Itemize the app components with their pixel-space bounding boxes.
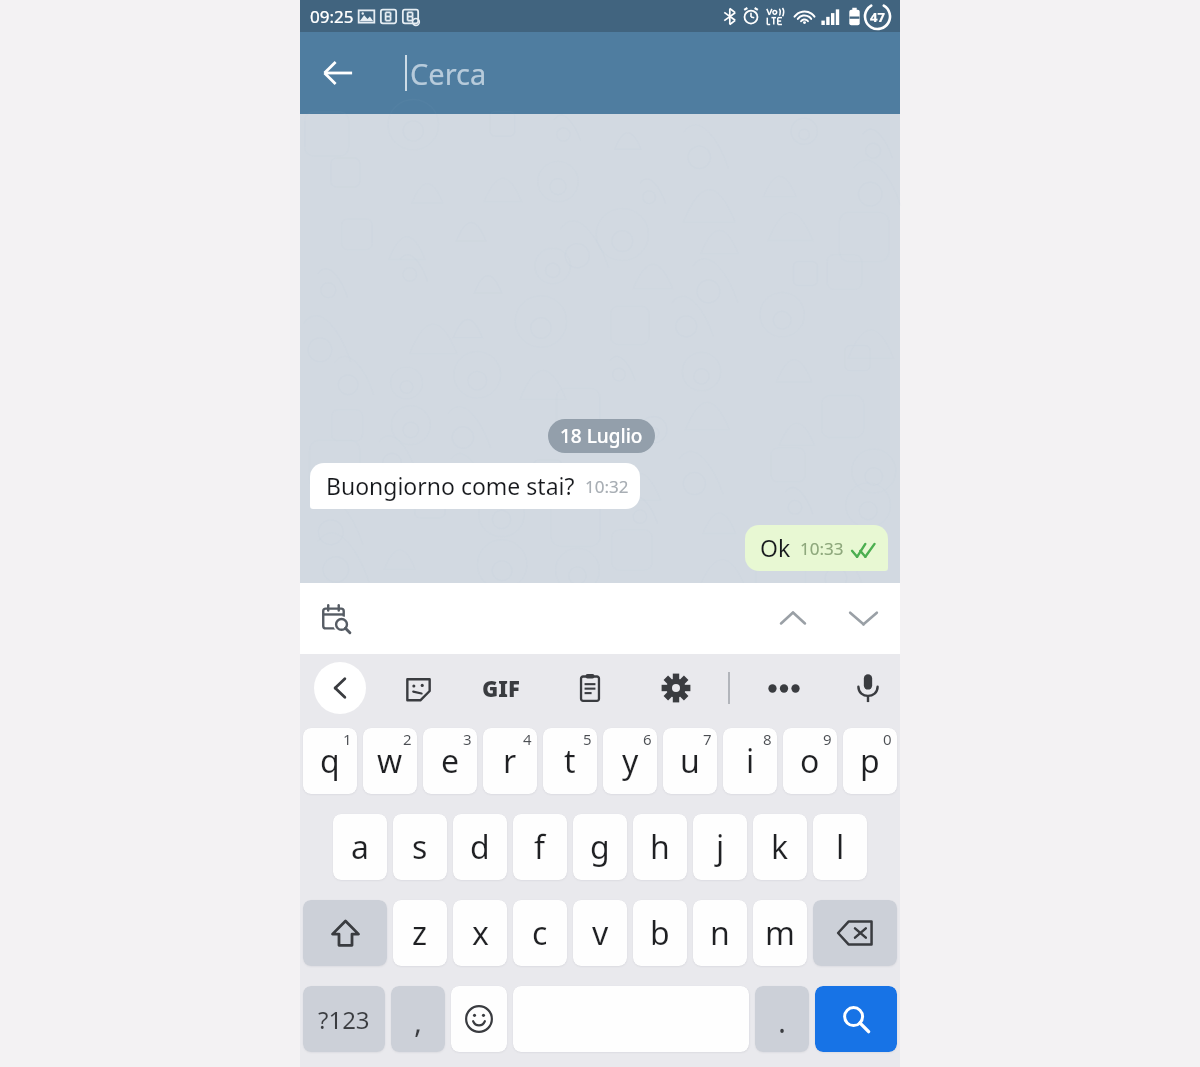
button[interactable]: s <box>393 814 447 880</box>
staticText: t <box>564 739 576 783</box>
staticText: 2 <box>403 729 412 749</box>
staticText: d <box>470 825 490 869</box>
staticText: f <box>534 825 546 869</box>
staticText: 9 <box>823 729 832 749</box>
button[interactable]: r <box>483 728 537 794</box>
button[interactable]: w <box>363 728 417 794</box>
staticText: k <box>771 825 789 869</box>
button[interactable]: Next result <box>835 590 891 646</box>
button[interactable]: h <box>633 814 687 880</box>
staticText: 5 <box>583 729 592 749</box>
staticText: ?123 <box>318 1003 370 1036</box>
button[interactable]: Shift <box>303 900 387 966</box>
button[interactable]: , <box>391 986 445 1052</box>
button[interactable]: u <box>663 728 717 794</box>
button[interactable]: j <box>693 814 747 880</box>
button[interactable]: b <box>633 900 687 966</box>
staticText: 10:33 <box>800 537 844 560</box>
button[interactable]: Backspace <box>813 900 897 966</box>
staticText: y <box>622 739 639 783</box>
staticText: 09:25 <box>310 5 354 28</box>
staticText: Buongiorno come stai? <box>326 470 575 501</box>
button[interactable]: c <box>513 900 567 966</box>
staticText: Cerca <box>410 54 487 93</box>
button[interactable]: Hide toolbar <box>314 662 366 714</box>
button[interactable]: n <box>693 900 747 966</box>
button[interactable]: y <box>603 728 657 794</box>
staticText: 3 <box>463 729 472 749</box>
button[interactable]: . <box>755 986 809 1052</box>
button[interactable]: x <box>453 900 507 966</box>
button[interactable]: p <box>843 728 897 794</box>
staticText: 7 <box>703 729 712 749</box>
button[interactable]: z <box>393 900 447 966</box>
staticText: o <box>800 739 820 783</box>
button[interactable]: Emoji <box>451 986 507 1052</box>
staticText: g <box>590 825 610 869</box>
staticText: x <box>472 911 489 955</box>
staticText: i <box>746 739 755 783</box>
staticText: . <box>778 1001 787 1042</box>
button[interactable]: e <box>423 728 477 794</box>
staticText: 0 <box>883 729 892 749</box>
staticText: c <box>532 911 548 955</box>
button[interactable]: Ok <box>745 525 888 571</box>
button[interactable]: Previous result <box>765 590 821 646</box>
staticText: u <box>680 739 700 783</box>
staticText: v <box>592 911 609 955</box>
staticText: s <box>412 825 428 869</box>
staticText: 8 <box>763 729 772 749</box>
staticText: 18 Luglio <box>560 423 643 449</box>
button[interactable]: a <box>333 814 387 880</box>
staticText: GIF <box>482 673 520 703</box>
staticText: , <box>414 1001 423 1042</box>
button[interactable]: Buongiorno come stai? <box>310 463 640 509</box>
button[interactable]: Voice input <box>845 665 891 711</box>
button[interactable]: GIF <box>478 665 524 711</box>
button[interactable]: Clipboard <box>567 665 613 711</box>
button[interactable]: v <box>573 900 627 966</box>
staticText: j <box>716 825 725 869</box>
button[interactable]: Search <box>815 986 897 1052</box>
button[interactable]: o <box>783 728 837 794</box>
button[interactable]: d <box>453 814 507 880</box>
button[interactable]: q <box>303 728 357 794</box>
button[interactable]: Stickers <box>395 665 441 711</box>
button[interactable]: i <box>723 728 777 794</box>
staticText: 1 <box>343 729 352 749</box>
button[interactable]: k <box>753 814 807 880</box>
staticText: q <box>320 739 340 783</box>
staticText: b <box>650 911 670 955</box>
staticText: 47 <box>870 8 885 26</box>
staticText: n <box>710 911 730 955</box>
button[interactable]: More options <box>761 665 807 711</box>
staticText: w <box>377 739 403 783</box>
staticText: a <box>351 825 369 869</box>
staticText: 4 <box>523 729 532 749</box>
staticText: 6 <box>643 729 652 749</box>
button[interactable]: m <box>753 900 807 966</box>
button[interactable]: 18 Luglio <box>548 419 655 453</box>
button[interactable]: f <box>513 814 567 880</box>
button[interactable]: Back <box>300 32 376 114</box>
staticText: m <box>765 911 795 955</box>
button[interactable]: Search by date <box>315 596 359 640</box>
button[interactable]: ?123 <box>303 986 385 1052</box>
button[interactable]: Settings <box>653 665 699 711</box>
staticText: z <box>412 911 428 955</box>
button[interactable]: g <box>573 814 627 880</box>
button[interactable]: t <box>543 728 597 794</box>
button[interactable]: l <box>813 814 867 880</box>
staticText: Ok <box>760 532 791 563</box>
staticText: r <box>503 739 517 783</box>
staticText: p <box>860 739 880 783</box>
staticText: h <box>650 825 670 869</box>
staticText: e <box>441 739 460 783</box>
staticText: l <box>836 825 845 869</box>
staticText: 10:32 <box>585 475 629 498</box>
